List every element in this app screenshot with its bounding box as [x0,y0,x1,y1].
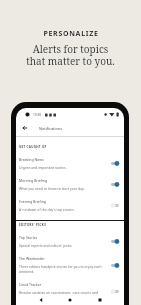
staticText: Top Stories [19,235,38,240]
button[interactable]: Morning Briefing [16,174,124,195]
button[interactable]: Covid Tracker [16,278,124,304]
staticText: EDITORS' PICKS [19,223,47,227]
button[interactable]: Breaking News [16,153,124,174]
button[interactable]: Recents [95,295,105,305]
button[interactable]: Back [36,295,46,305]
staticText: PERSONALIZE [43,29,99,39]
staticText: Special reports and editors' picks. [19,243,73,248]
staticText: A rundown of the day's top stories. [19,207,75,212]
staticText: Evening Briefing [19,199,47,204]
staticText: 10:30 [33,113,42,117]
staticText: Morning Briefing [19,178,48,183]
staticText: Notifications [39,126,63,131]
button[interactable]: The Weekender [16,252,124,278]
staticText: What you need to know to start your day. [19,186,85,191]
staticText: Three editors handpick stories for you t… [19,264,108,274]
staticText: GET CAUGHT UP [19,145,47,149]
staticText: Covid Tracker [19,282,42,287]
staticText: Alerts for topics that matter to you. [26,42,115,68]
staticText: Urgent and important stories. [19,165,67,170]
staticText: Regular updates on vaccinations, case co… [19,290,108,300]
button[interactable]: Top Stories [16,231,124,252]
staticText: The Weekender [19,256,45,261]
button[interactable]: Back [20,123,30,133]
staticText: Breaking News [19,157,44,162]
button[interactable]: Home [65,295,75,305]
button[interactable]: Evening Briefing [16,195,124,216]
